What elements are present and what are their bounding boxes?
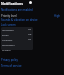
staticText: Priority level xyxy=(1,14,17,18)
button[interactable]: Reminders xyxy=(2,42,32,47)
button[interactable]: System xyxy=(2,47,32,52)
staticText: Messages xyxy=(2,28,14,31)
staticText: Notifications xyxy=(1,1,23,6)
button[interactable]: Email xyxy=(2,32,32,37)
staticText: Email xyxy=(2,33,9,36)
button[interactable]: Messages xyxy=(2,27,32,32)
staticText: Calendar xyxy=(2,38,13,41)
staticText: Off xyxy=(28,33,32,36)
staticText: System xyxy=(2,48,11,51)
button[interactable]: Terms of service xyxy=(1,63,64,68)
button[interactable]: More options xyxy=(29,1,32,4)
staticText: High xyxy=(54,14,60,18)
button[interactable]: Sounds & vibration on device xyxy=(1,17,64,22)
button[interactable]: Privacy policy xyxy=(1,57,64,62)
staticText: Sounds & vibration on device xyxy=(1,18,38,22)
staticText: Reminders xyxy=(2,43,15,46)
staticText: On xyxy=(28,28,32,31)
staticText: Terms of service xyxy=(1,64,22,68)
button[interactable]: Notifications xyxy=(1,0,23,6)
button[interactable]: Calendar xyxy=(2,37,32,42)
staticText: Privacy policy xyxy=(1,58,18,62)
button[interactable]: Notifications are enabled xyxy=(1,7,64,12)
staticText: Notifications are enabled xyxy=(1,8,33,12)
button[interactable]: Lock screen xyxy=(1,22,64,27)
staticText: Lock screen xyxy=(1,23,16,27)
button[interactable]: Priority level xyxy=(1,13,63,18)
staticText: On xyxy=(28,38,32,41)
